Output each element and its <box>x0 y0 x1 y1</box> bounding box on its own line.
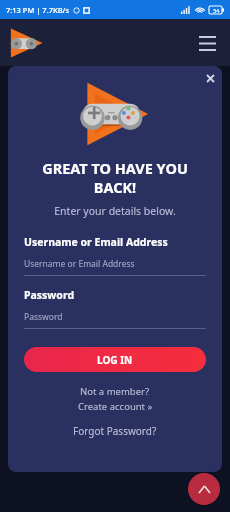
button[interactable]: LOG IN <box>24 347 206 372</box>
button[interactable]: Close <box>199 67 221 89</box>
button[interactable]: Menu <box>194 30 220 56</box>
button[interactable]: Scroll to top <box>188 473 220 505</box>
staticText: Password <box>24 311 63 323</box>
staticText: Not a member? <box>80 385 150 398</box>
staticText: Enter your details below. <box>24 204 206 218</box>
button[interactable]: Home logo <box>8 25 56 61</box>
staticText: Username or Email Address <box>24 235 168 249</box>
staticText: LOG IN <box>97 353 133 367</box>
staticText: 34 <box>213 7 220 14</box>
button[interactable]: Not a member? <box>24 385 206 413</box>
staticText: Forgot Password? <box>73 424 157 438</box>
button[interactable]: Password <box>24 288 206 329</box>
staticText: Username or Email Address <box>24 258 135 270</box>
button[interactable]: Forgot Password? <box>73 424 157 438</box>
staticText: Create account » <box>78 400 153 413</box>
staticText: Password <box>24 288 75 302</box>
staticText: GREAT TO HAVE YOU BACK! <box>24 158 206 197</box>
staticText: 7:13 PM | 7.7KB/s <box>6 5 70 15</box>
button[interactable]: Username or Email Address <box>24 235 206 276</box>
